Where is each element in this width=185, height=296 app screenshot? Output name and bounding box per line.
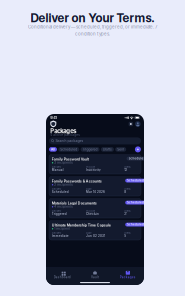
button[interactable]: Family Passwords & Accounts	[49, 176, 141, 196]
staticText: Date	[86, 232, 91, 235]
staticText: condition types.	[75, 31, 110, 37]
staticText: Date	[86, 188, 91, 191]
staticText: Triggered	[83, 147, 98, 151]
button[interactable]: Triggered	[81, 147, 100, 152]
staticText: Schedule	[128, 157, 143, 160]
staticText: Ultimate Membership Time Capsule	[52, 223, 111, 227]
button[interactable]: Account	[135, 121, 141, 127]
staticText: Drafts	[103, 147, 112, 151]
button[interactable]: Drafts	[101, 147, 114, 152]
staticText: Immediate	[52, 234, 69, 238]
staticText: Triggered	[52, 212, 67, 216]
button[interactable]: Ultimate Membership Time Capsule	[49, 220, 141, 240]
staticText: Items	[124, 210, 130, 213]
staticText: Delivery	[52, 188, 61, 191]
staticText: All	[51, 147, 55, 151]
staticText: Trigger	[86, 210, 95, 213]
staticText: Items	[124, 166, 130, 169]
staticText: Family Passwords & Accounts	[52, 179, 102, 183]
staticText: 4 recipients	[54, 205, 72, 208]
staticText: Materials Legal Documents	[52, 201, 97, 205]
staticText: Sent	[117, 147, 124, 151]
staticText: Conditional delivery — scheduled, trigge…	[28, 24, 157, 30]
staticText: 1 recipient	[54, 227, 70, 230]
staticText: Items	[124, 188, 130, 191]
staticText: Trigger	[86, 166, 95, 169]
staticText: 9:41	[50, 115, 57, 120]
button[interactable]: Search packages	[49, 137, 141, 144]
staticText: 3 recipients	[54, 161, 72, 164]
button[interactable]: Family Password Vault	[49, 154, 141, 174]
button[interactable]: Layout	[128, 121, 134, 127]
staticText: Packages	[50, 128, 76, 135]
button[interactable]: Packages	[111, 270, 144, 279]
staticText: Delivery	[52, 166, 61, 169]
staticText: Scheduled	[127, 201, 144, 204]
staticText: 12	[124, 168, 127, 172]
staticText: 4 active packages	[50, 133, 80, 137]
staticText: Search packages	[55, 139, 83, 143]
staticText: Jun 02 2031	[86, 234, 105, 238]
button[interactable]: Materials Legal Documents	[49, 198, 141, 218]
staticText: Scheduled	[127, 179, 144, 182]
staticText: Scheduled	[52, 190, 69, 194]
staticText: Scheduled	[127, 223, 144, 226]
staticText: 21	[124, 212, 127, 216]
staticText: Delivery	[52, 210, 61, 213]
button[interactable]: Vault	[79, 270, 111, 279]
staticText: Scheduled	[60, 147, 77, 151]
staticText: Mar 14 2026	[86, 190, 105, 194]
button[interactable]: Sent	[115, 147, 126, 152]
button[interactable]: Scheduled	[58, 147, 79, 152]
button[interactable]: New package	[135, 146, 141, 152]
staticText: Check-in	[86, 212, 99, 216]
staticText: Family Password Vault	[52, 157, 89, 161]
staticText: Vault	[91, 276, 99, 279]
staticText: 2 recipients	[54, 183, 72, 186]
button[interactable]: All	[49, 147, 57, 152]
staticText: 5	[124, 234, 126, 238]
staticText: Deliver on Your Terms.	[30, 11, 154, 25]
button[interactable]: Dashboard	[46, 270, 79, 279]
staticText: 8	[124, 190, 126, 194]
staticText: Delivery	[52, 232, 61, 235]
staticText: Manual	[52, 168, 64, 172]
staticText: Packages	[120, 276, 136, 279]
staticText: Inactivity	[86, 168, 101, 172]
staticText: Dashboard	[54, 276, 71, 279]
staticText: Items	[124, 232, 130, 235]
